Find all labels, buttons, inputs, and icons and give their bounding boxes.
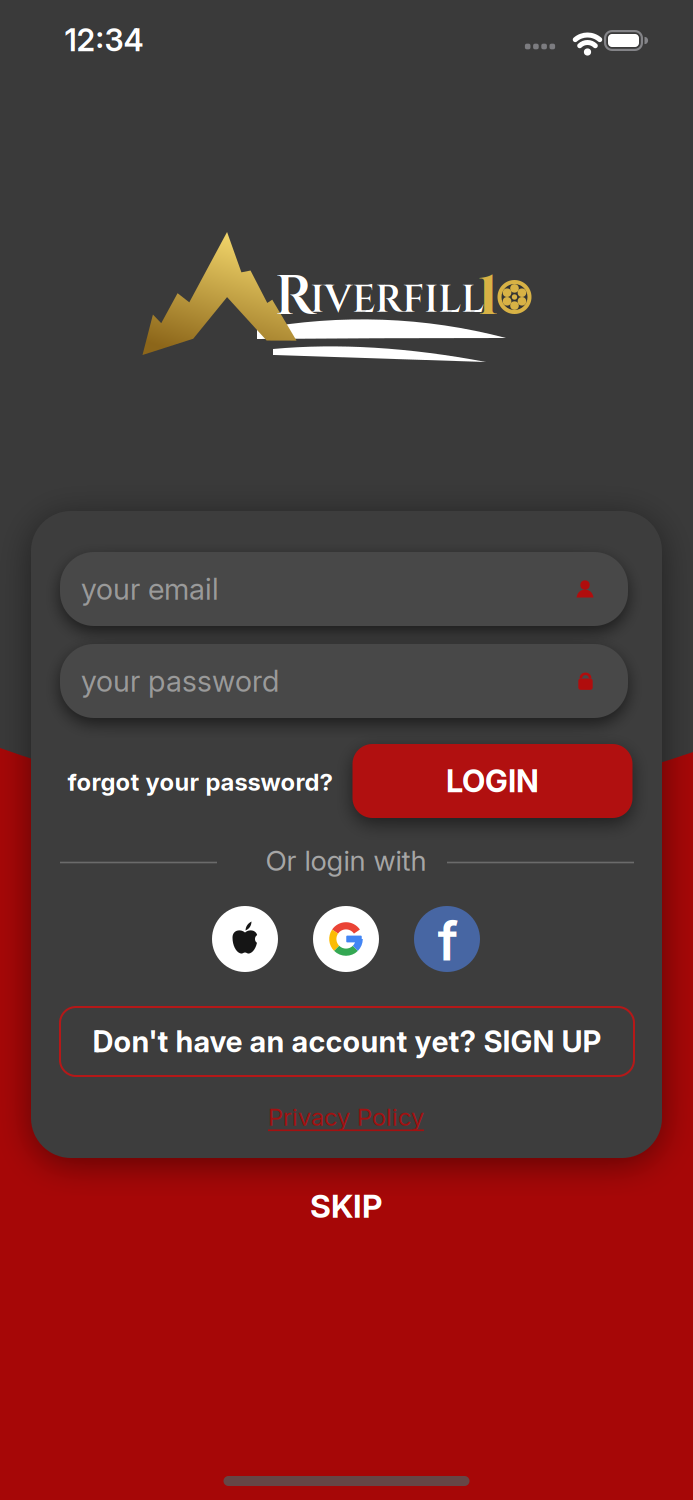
button[interactable]: your password [60, 644, 628, 718]
staticText: Or login with [265, 844, 426, 877]
button[interactable]: LOGIN [352, 744, 632, 818]
staticText: Privacy Policy [268, 1102, 424, 1131]
staticText: forgot your password? [67, 767, 332, 796]
staticText: 12:34 [64, 21, 143, 58]
staticText: your password [81, 663, 279, 699]
button[interactable]: Sign in with Apple [212, 906, 278, 972]
staticText: your email [81, 571, 219, 607]
button[interactable]: forgot your password? [67, 767, 332, 796]
staticText: R [274, 259, 315, 335]
staticText: Don't have an account yet? SIGN UP [92, 1024, 601, 1059]
button[interactable]: Privacy Policy [268, 1102, 424, 1131]
button[interactable]: Sign in with Google [313, 906, 379, 972]
staticText: 1 [477, 259, 499, 335]
staticText: f [437, 909, 458, 973]
button[interactable]: your email [60, 552, 628, 626]
button[interactable]: SKIP [310, 1187, 382, 1225]
staticText: SKIP [310, 1187, 382, 1225]
staticText: LOGIN [446, 762, 539, 799]
button[interactable]: Don't have an account yet? SIGN UP [59, 1006, 635, 1077]
button[interactable]: Sign in with Facebook [414, 906, 480, 972]
staticText: IVERFILL [310, 274, 484, 326]
